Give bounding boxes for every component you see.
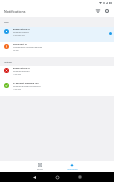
staticText: Today <box>4 21 9 23</box>
staticText: Beam Fixture VI <box>13 28 30 31</box>
button[interactable]: F1 Exhaust Manifold 1XX <box>0 81 114 96</box>
button[interactable]: Beam Fixture VI <box>0 66 114 81</box>
button[interactable]: Spare part 19 <box>0 42 114 57</box>
staticText: Firmware finished successfully <box>13 85 41 88</box>
button[interactable]: Beam Fixture VI <box>0 27 114 42</box>
button[interactable]: Rooms <box>28 161 52 172</box>
button[interactable]: Notifications <box>60 161 84 172</box>
button[interactable]: Account <box>102 6 112 16</box>
staticText: Rooms <box>37 168 43 170</box>
staticText: 1 day ago <box>13 88 21 90</box>
staticText: Yesterday <box>4 61 12 63</box>
staticText: Notifications <box>67 168 78 170</box>
staticText: Notifications <box>4 9 26 14</box>
button[interactable]: Home <box>51 172 63 182</box>
button[interactable]: Filter <box>93 6 103 16</box>
staticText: Firmware aborted <box>13 70 30 73</box>
staticText: 4 minutes ago <box>13 34 25 36</box>
button[interactable]: Recents <box>74 172 86 182</box>
staticText: Beam Fixture VI <box>13 67 30 70</box>
staticText: 4h ago <box>13 49 19 51</box>
staticText: Spare part 19 <box>13 43 27 46</box>
staticText: Firmware started <box>13 31 29 34</box>
staticText: Configuration changes required <box>13 46 42 49</box>
button[interactable]: Back <box>28 172 40 182</box>
staticText: F1 Exhaust Manifold 1XX <box>13 82 39 85</box>
staticText: 1 day ago <box>13 73 21 75</box>
